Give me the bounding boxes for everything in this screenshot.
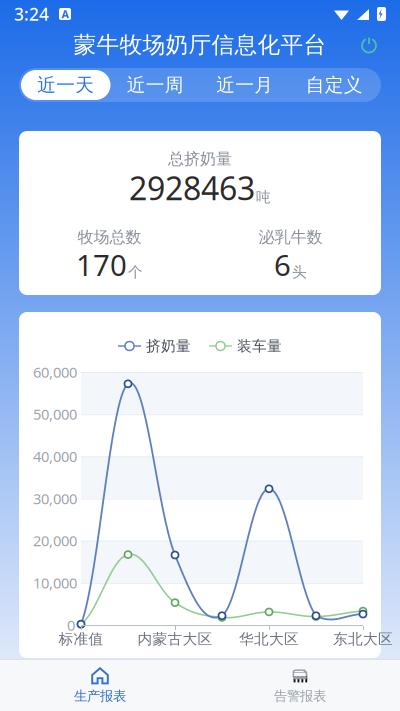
staticText: 个 xyxy=(128,263,143,281)
staticText: 自定义 xyxy=(306,73,363,96)
staticText: 总挤奶量 xyxy=(168,149,232,169)
button[interactable]: 近一周 xyxy=(110,70,200,100)
staticText: 近一天 xyxy=(37,73,94,96)
staticText: 牧场总数 xyxy=(77,227,141,247)
staticText: 挤奶量 xyxy=(146,337,191,355)
staticText: 泌乳牛数 xyxy=(258,227,322,247)
button[interactable]: 生产报表 xyxy=(0,660,200,711)
staticText: 蒙牛牧场奶厅信息化平台 xyxy=(73,31,326,59)
button[interactable]: 电源 xyxy=(352,28,386,62)
staticText: 170 xyxy=(76,245,127,284)
button[interactable]: 近一月 xyxy=(200,70,289,100)
staticText: 20,000 xyxy=(33,531,77,550)
button[interactable]: 近一天 xyxy=(21,70,110,100)
staticText: 吨 xyxy=(256,188,271,206)
staticText: A xyxy=(61,7,68,21)
staticText: 60,000 xyxy=(33,362,77,382)
staticText: 内蒙古大区 xyxy=(137,630,212,648)
staticText: 近一月 xyxy=(216,73,273,96)
staticText: 近一周 xyxy=(127,73,184,96)
staticText: 告警报表 xyxy=(274,688,326,704)
staticText: 30,000 xyxy=(33,489,77,508)
staticText: 华北大区 xyxy=(239,630,299,648)
staticText: 装车量 xyxy=(237,337,282,355)
staticText: 0 xyxy=(67,615,75,635)
staticText: 10,000 xyxy=(33,573,77,593)
button[interactable]: 自定义 xyxy=(289,70,379,100)
button[interactable]: 告警报表 xyxy=(200,660,400,711)
staticText: 50,000 xyxy=(33,404,77,424)
staticText: 2928463 xyxy=(129,167,255,209)
staticText: 头 xyxy=(292,263,307,281)
staticText: 40,000 xyxy=(33,447,77,466)
staticText: 生产报表 xyxy=(74,688,126,704)
staticText: 6 xyxy=(274,245,291,284)
staticText: 3:24 xyxy=(14,2,49,25)
staticText: 标准值 xyxy=(58,630,103,648)
staticText: 东北大区 xyxy=(333,630,393,648)
